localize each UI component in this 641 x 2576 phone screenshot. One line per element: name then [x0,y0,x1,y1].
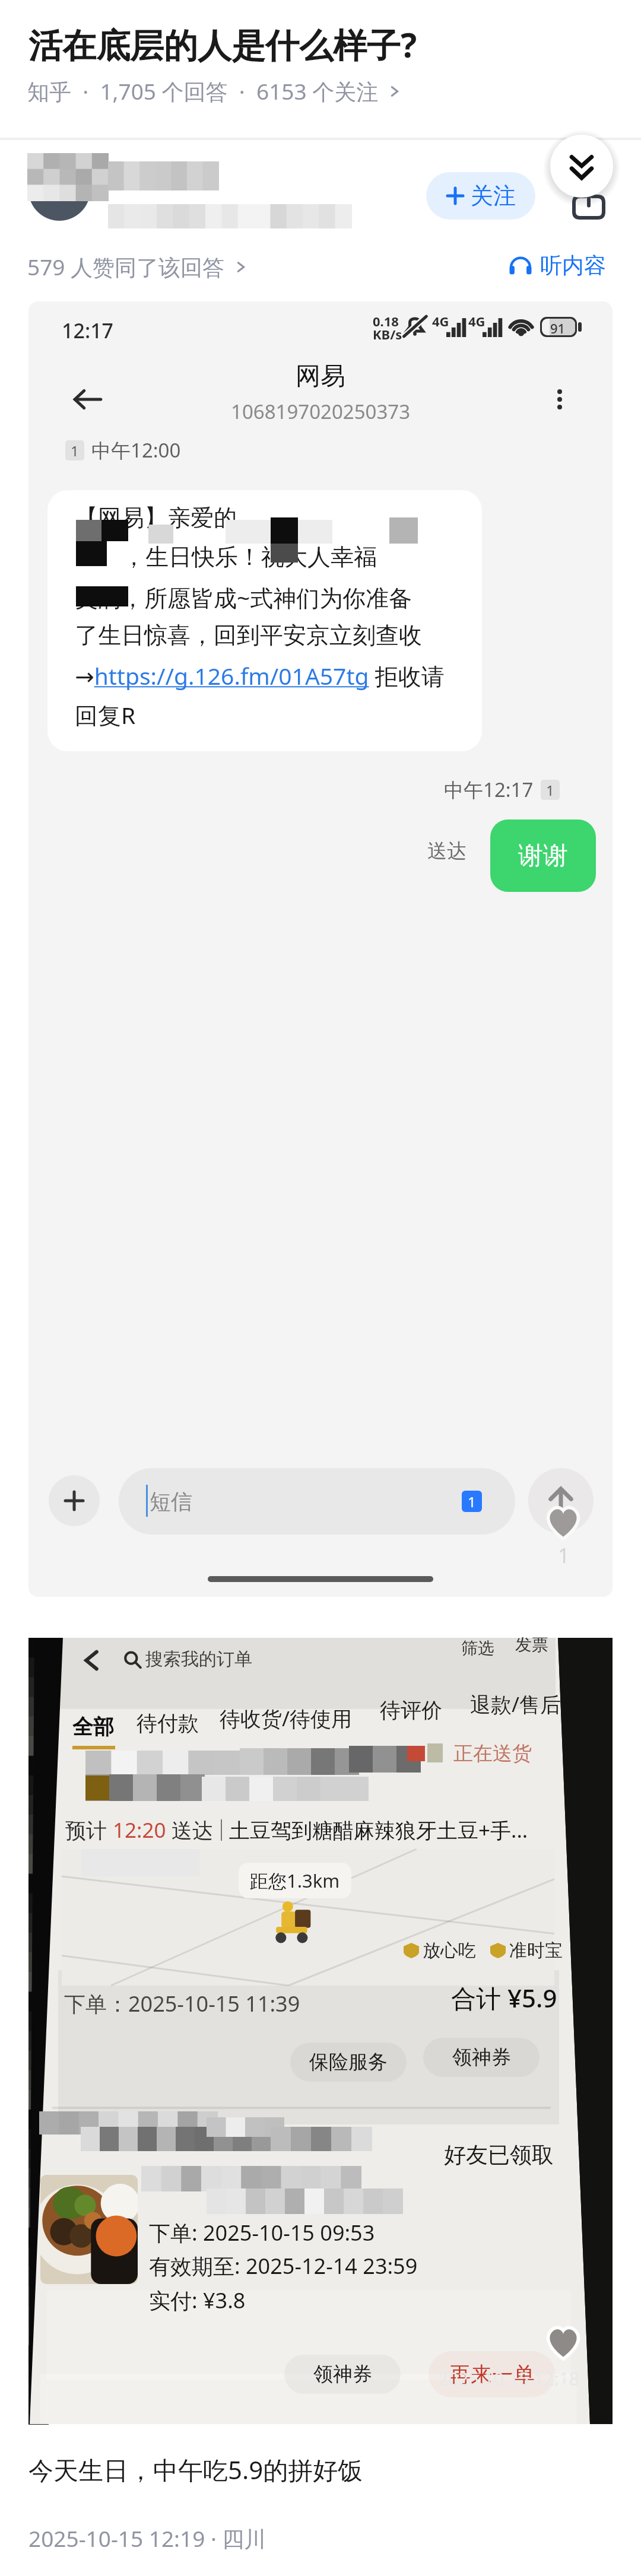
staticText: 领神券 [452,2045,511,2070]
staticText: 领神券 [313,2362,372,2387]
staticText: 下单：2025-10-15 11:39 [64,1989,300,2018]
staticText: 2025-10-15 12:19 · 四川 [28,2523,266,2553]
staticText: 12:20 [113,1816,166,1844]
staticText: 4G [432,312,449,330]
button[interactable]: 听内容 [508,252,606,279]
staticText: 中午12:17 [444,776,534,803]
button[interactable]: Send [528,1468,594,1533]
staticText: 发票 [515,1634,548,1655]
staticText: 谢谢 [518,840,568,872]
staticText: 网易 [296,361,345,392]
staticText: 送达 [427,838,467,863]
button[interactable]: Save [570,190,609,229]
button[interactable]: 领神券 [284,2355,401,2394]
staticText: 筛选 [461,1638,494,1659]
staticText: 待收货/待使用 [220,1704,353,1733]
staticText: 再来一单 [449,2361,535,2388]
staticText: 回复R [75,699,136,730]
staticText: 今天生日，中午吃5.9的拼好饭 [28,2453,363,2486]
staticText: 了生日惊喜，回到平安京立刻查收 [75,621,422,650]
staticText: 1 [71,441,79,460]
staticText: 1068197020250373 [231,398,411,425]
staticText: 有效期至: 2025-12-14 23:59 [149,2251,418,2280]
staticText: 送达 [166,1816,214,1844]
staticText: 579 人赞同了该回答 [27,252,225,282]
staticText: 1 [558,1542,570,1569]
button[interactable]: 再来一单 [429,2351,555,2397]
staticText: 短信 [150,1488,192,1515]
staticText: →https://g.126.fm/01A57tg 拒收请 [75,660,445,691]
staticText: 知乎 · 1,705 个回答 · 6153 个关注 [27,76,379,106]
staticText: 合计 ¥5.9 [451,1981,557,2015]
button[interactable]: Like [546,1506,580,1538]
staticText: 12:17 [62,317,114,344]
staticText: 0.18 [373,312,399,330]
staticText: 距您1.3km [250,1868,340,1893]
staticText: KB/s [373,325,402,343]
staticText: 土豆驾到糖醋麻辣狼牙土豆+手... [229,1816,528,1844]
button[interactable]: Scroll down [550,135,613,198]
staticText: 放心吃 [423,1939,476,1962]
staticText: 全部 [72,1714,114,1740]
staticText: 【网易】亲爱的 [75,503,237,532]
staticText: 待评价 [380,1697,442,1723]
staticText: 退款/售后 [470,1690,561,1719]
button[interactable]: 短信 [119,1468,515,1535]
button[interactable]: 知乎 · 1,705 个回答 · 6153 个关注 [27,76,402,106]
staticText: 保险服务 [309,2050,388,2075]
staticText: 搜索我的订单 [145,1648,252,1670]
button[interactable]: More options [536,376,583,423]
staticText: 准时宝 [509,1939,563,1962]
staticText: 91 [550,319,566,336]
staticText: 实付: ¥3.8 [149,2286,246,2315]
staticText: 待付款 [137,1710,199,1736]
staticText: 1 [546,780,554,800]
staticText: 2025.10.15 12:18 [438,2367,579,2391]
staticText: 4G [468,312,485,330]
staticText: 1 [468,1492,476,1511]
button[interactable]: 保险服务 [290,2043,407,2082]
button[interactable]: Like [546,2326,580,2358]
staticText: 下单: 2025-10-15 09:53 [149,2218,375,2247]
staticText: ，生日快乐！祝大人幸福 [122,542,377,571]
staticText: 美满，所愿皆成~式神们为你准备 [75,582,412,613]
staticText: 正在送货 [453,1741,532,1766]
button[interactable]: Add attachment [49,1475,100,1526]
button[interactable]: Author avatar [28,159,90,221]
staticText: 听内容 [540,252,606,279]
button[interactable]: 579 人赞同了该回答 [27,252,249,282]
button[interactable]: 领神券 [423,2038,540,2077]
button[interactable]: Back [64,376,112,423]
staticText: 好友已领取 [444,2141,554,2169]
staticText: 中午12:00 [91,437,181,463]
staticText: 活在底层的人是什么样子? [28,21,417,68]
button[interactable]: 关注 [426,172,535,220]
staticText: 关注 [471,182,516,210]
staticText: 预计 [65,1816,113,1844]
